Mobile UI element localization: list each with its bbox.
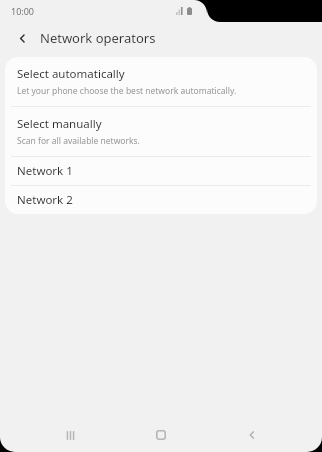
button[interactable]: Select automatically — [5, 57, 317, 106]
button[interactable]: Back — [231, 418, 273, 452]
staticText: Network 2 — [17, 192, 73, 208]
button[interactable]: Recents — [49, 418, 91, 452]
staticText: Network 1 — [17, 163, 73, 179]
staticText: Let your phone choose the best network a… — [17, 85, 237, 97]
button[interactable]: Network 2 — [5, 186, 317, 214]
button[interactable]: Back — [11, 27, 33, 49]
button[interactable]: Network 1 — [5, 157, 317, 185]
staticText: Select manually — [17, 116, 102, 132]
staticText: Scan for all available networks. — [17, 135, 140, 147]
staticText: Network operators — [40, 29, 156, 47]
button[interactable]: Home — [140, 418, 182, 452]
button[interactable]: Select manually — [5, 107, 317, 156]
staticText: Select automatically — [17, 66, 125, 82]
staticText: 10:00 — [11, 5, 35, 17]
